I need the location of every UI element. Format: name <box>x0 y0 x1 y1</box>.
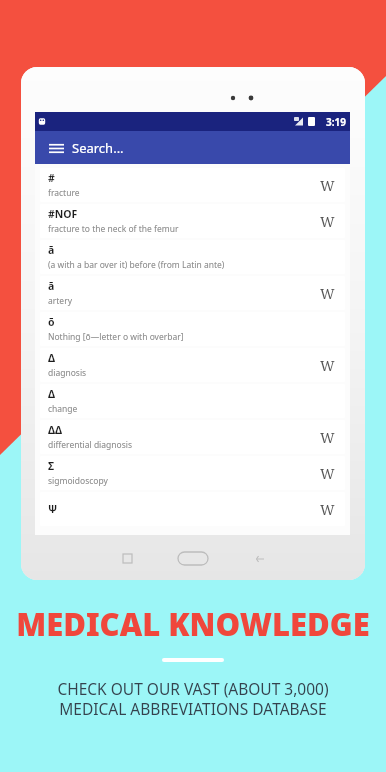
button[interactable]: ΔΔ <box>40 420 345 454</box>
staticText: sigmoidoscopy <box>48 475 108 487</box>
staticText: W <box>320 356 335 375</box>
button[interactable]: Open Wikipedia article <box>317 175 337 195</box>
button[interactable]: Back <box>246 545 272 571</box>
staticText: fracture <box>48 187 80 199</box>
staticText: ā <box>48 279 55 293</box>
button[interactable]: Open Wikipedia article <box>317 463 337 483</box>
button[interactable]: Open navigation menu <box>43 135 69 161</box>
staticText: CHECK OUT OUR VAST (ABOUT 3,000) MEDICAL… <box>57 678 329 720</box>
button[interactable]: ā <box>40 240 345 274</box>
staticText: differential diagnosis <box>48 439 133 451</box>
button[interactable]: Open Wikipedia article <box>317 211 337 231</box>
staticText: fracture to the neck of the femur <box>48 223 179 235</box>
button[interactable]: Σ <box>40 456 345 490</box>
staticText: W <box>320 428 335 447</box>
staticText: (a with a bar over it) before (from Lati… <box>48 259 225 271</box>
button[interactable]: Ψ <box>40 492 345 526</box>
staticText: ā <box>48 243 55 257</box>
button[interactable]: Δ <box>40 384 345 418</box>
staticText: diagnosis <box>48 367 87 379</box>
button[interactable]: Open Wikipedia article <box>317 499 337 519</box>
staticText: 3:19 <box>326 115 346 129</box>
button[interactable]: Home <box>176 541 210 575</box>
button[interactable]: ā <box>40 276 345 310</box>
staticText: Ψ <box>48 502 58 516</box>
staticText: Search... <box>72 139 124 157</box>
button[interactable]: #NOF <box>40 204 345 238</box>
staticText: ō <box>48 315 55 329</box>
button[interactable]: Recent apps <box>114 545 140 571</box>
staticText: #NOF <box>48 207 78 221</box>
button[interactable]: Open Wikipedia article <box>317 355 337 375</box>
staticText: W <box>320 500 335 519</box>
button[interactable]: Open Wikipedia article <box>317 427 337 447</box>
staticText: W <box>320 176 335 195</box>
button[interactable]: Δ <box>40 348 345 382</box>
staticText: artery <box>48 295 72 307</box>
button[interactable]: # <box>40 168 345 202</box>
button[interactable]: ō <box>40 312 345 346</box>
staticText: change <box>48 403 78 415</box>
staticText: ΔΔ <box>48 423 63 437</box>
staticText: Δ <box>48 351 56 365</box>
button[interactable]: Search... <box>69 131 350 164</box>
staticText: MEDICAL KNOWLEDGE <box>16 603 370 645</box>
staticText: W <box>320 284 335 303</box>
button[interactable]: Open Wikipedia article <box>317 283 337 303</box>
staticText: Nothing [ō—letter o with overbar] <box>48 331 184 343</box>
staticText: Σ <box>48 459 55 473</box>
staticText: W <box>320 212 335 231</box>
staticText: Δ <box>48 387 56 401</box>
staticText: W <box>320 464 335 483</box>
staticText: # <box>48 171 55 185</box>
